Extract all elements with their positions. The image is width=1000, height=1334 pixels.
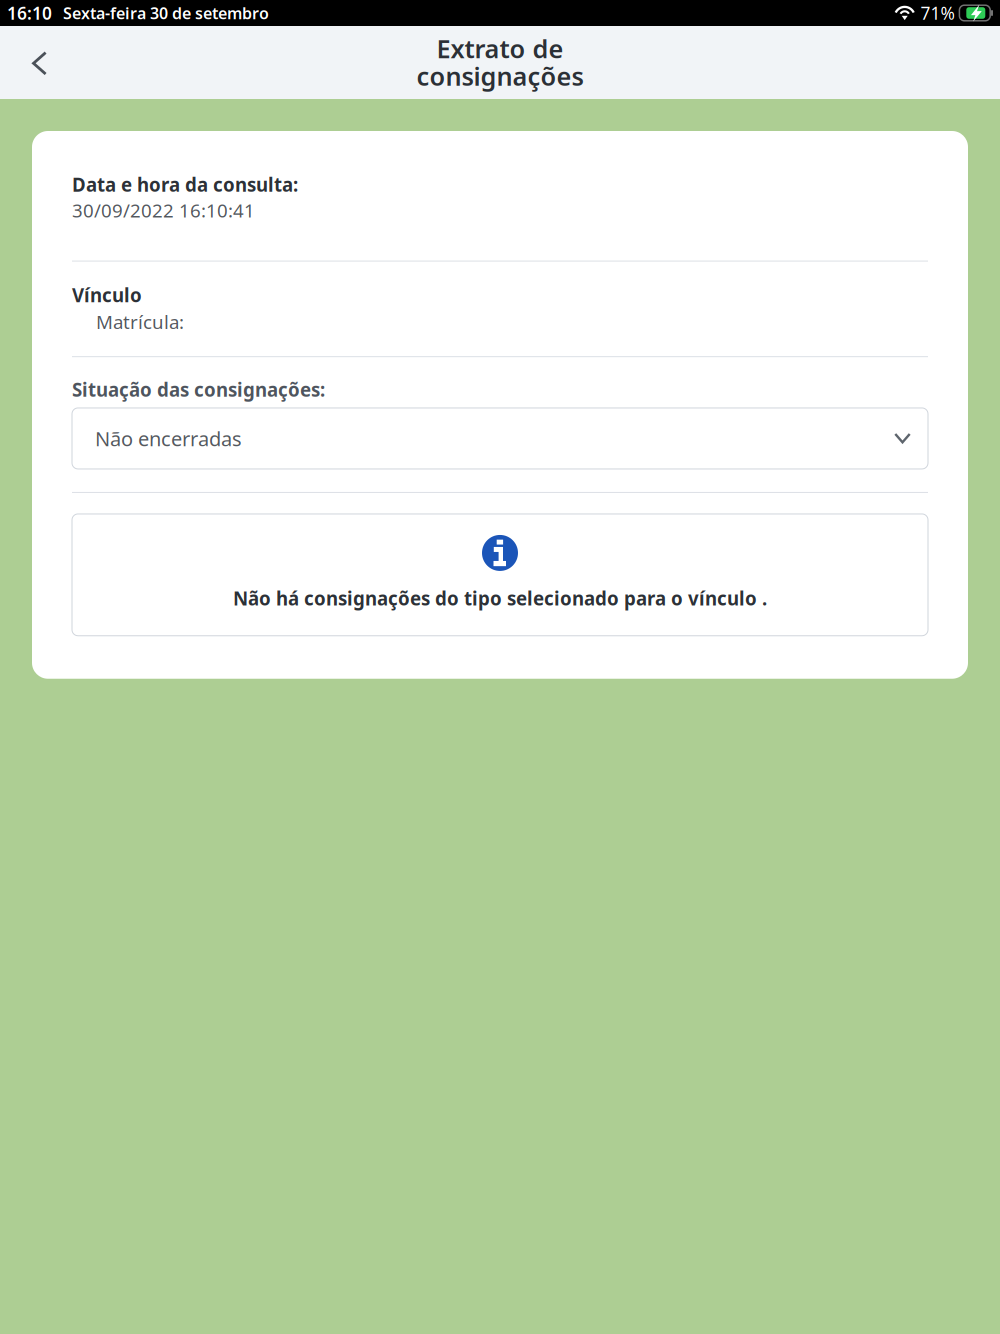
staticText: 16:10 bbox=[7, 1, 52, 24]
staticText: Sexta-feira 30 de setembro bbox=[63, 2, 269, 24]
staticText: 30/09/2022 16:10:41 bbox=[72, 198, 255, 223]
staticText: Matrícula: bbox=[96, 309, 184, 334]
button[interactable]: Voltar bbox=[0, 32, 67, 93]
staticText: Não encerradas bbox=[95, 425, 242, 452]
staticText: 71% bbox=[920, 1, 954, 24]
staticText: Situação das consignações: bbox=[72, 377, 325, 402]
staticText: Extrato de bbox=[436, 32, 563, 65]
staticText: Data e hora da consulta: bbox=[72, 172, 298, 197]
staticText: Não há consignações do tipo selecionado … bbox=[233, 586, 767, 611]
staticText: Vínculo bbox=[72, 283, 142, 307]
button[interactable]: Não encerradas bbox=[72, 408, 928, 469]
staticText: consignações bbox=[416, 59, 583, 93]
